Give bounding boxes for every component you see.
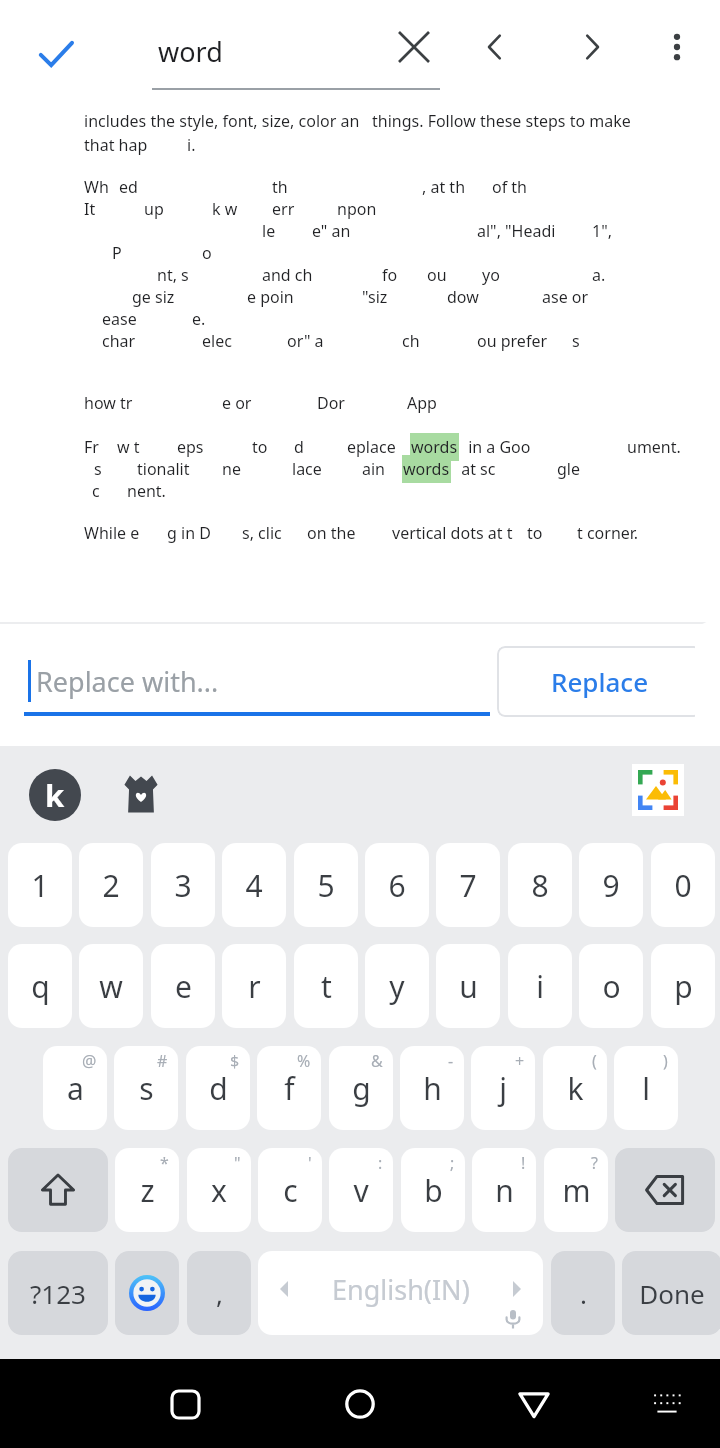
button[interactable]: r bbox=[222, 944, 286, 1028]
button[interactable]: Clear search bbox=[381, 14, 447, 80]
button[interactable]: 7 bbox=[436, 843, 500, 927]
button[interactable]: q bbox=[8, 944, 72, 1028]
button[interactable]: Replace bbox=[497, 646, 702, 717]
staticText: al", "Headi bbox=[477, 220, 556, 242]
staticText: of th bbox=[492, 176, 528, 198]
staticText: gle bbox=[557, 458, 580, 480]
button[interactable]: 6 bbox=[365, 843, 429, 927]
button[interactable]: a bbox=[43, 1046, 107, 1130]
button[interactable]: w bbox=[79, 944, 143, 1028]
button[interactable]: Done bbox=[622, 1251, 720, 1335]
staticText: r bbox=[248, 966, 261, 1007]
button[interactable]: n bbox=[472, 1148, 536, 1232]
staticText: eps bbox=[177, 436, 204, 458]
button[interactable]: ?123 bbox=[8, 1251, 108, 1335]
staticText: word bbox=[158, 33, 223, 70]
button[interactable]: Next result bbox=[559, 14, 625, 80]
button[interactable]: Emoji bbox=[115, 1251, 179, 1335]
staticText: words bbox=[403, 458, 450, 480]
staticText: npon bbox=[337, 198, 377, 220]
button[interactable]: p bbox=[651, 944, 715, 1028]
staticText: ) bbox=[663, 1050, 668, 1072]
staticText: dow bbox=[447, 286, 479, 308]
button[interactable]: Shift bbox=[8, 1148, 108, 1232]
staticText: 2 bbox=[102, 865, 120, 906]
button[interactable]: d bbox=[186, 1046, 250, 1130]
staticText: w bbox=[99, 966, 123, 1007]
button[interactable]: , bbox=[187, 1251, 251, 1335]
button[interactable]: 1 bbox=[8, 843, 72, 927]
staticText: ge siz bbox=[132, 286, 175, 308]
button[interactable]: 3 bbox=[151, 843, 215, 927]
button[interactable]: Home bbox=[327, 1371, 393, 1437]
staticText: eplace bbox=[347, 436, 400, 458]
staticText: includes the style, font, size, color an bbox=[84, 110, 360, 132]
button[interactable]: 4 bbox=[222, 843, 286, 927]
button[interactable]: Kika keyboard menu bbox=[29, 769, 81, 821]
staticText: w t bbox=[117, 436, 140, 458]
staticText: u bbox=[459, 966, 478, 1007]
button[interactable]: o bbox=[579, 944, 643, 1028]
staticText: o bbox=[602, 966, 621, 1007]
button[interactable]: m bbox=[544, 1148, 608, 1232]
staticText: e poin bbox=[247, 286, 294, 308]
button[interactable]: j bbox=[471, 1046, 535, 1130]
staticText: $ bbox=[230, 1050, 240, 1072]
button[interactable]: g bbox=[329, 1046, 393, 1130]
staticText: 8 bbox=[531, 865, 549, 906]
button[interactable]: v bbox=[329, 1148, 393, 1232]
button[interactable]: u bbox=[436, 944, 500, 1028]
staticText: * bbox=[160, 1152, 169, 1174]
button[interactable]: i bbox=[508, 944, 572, 1028]
button[interactable]: 2 bbox=[79, 843, 143, 927]
staticText: ain bbox=[362, 458, 390, 480]
staticText: i. bbox=[187, 134, 196, 156]
staticText: err bbox=[272, 198, 295, 220]
staticText: s bbox=[572, 330, 580, 352]
button[interactable]: 9 bbox=[579, 843, 643, 927]
button[interactable]: word bbox=[152, 20, 440, 90]
button[interactable]: Backspace bbox=[615, 1148, 715, 1232]
staticText: Wh bbox=[84, 176, 109, 198]
staticText: how tr bbox=[84, 392, 133, 414]
button[interactable]: z bbox=[115, 1148, 179, 1232]
button[interactable]: Stickers bbox=[116, 769, 166, 819]
staticText: 4 bbox=[245, 865, 263, 906]
staticText: ou prefer bbox=[477, 330, 548, 352]
button[interactable]: 8 bbox=[508, 843, 572, 927]
button[interactable]: e bbox=[151, 944, 215, 1028]
button[interactable]: c bbox=[258, 1148, 322, 1232]
button[interactable]: x bbox=[187, 1148, 251, 1232]
button[interactable]: Done bbox=[20, 18, 92, 90]
button[interactable]: Replace with... bbox=[24, 654, 490, 716]
staticText: ? bbox=[591, 1152, 598, 1174]
button[interactable]: s bbox=[114, 1046, 178, 1130]
staticText: e. bbox=[192, 308, 206, 330]
button[interactable]: Previous result bbox=[462, 14, 528, 80]
button[interactable]: h bbox=[400, 1046, 464, 1130]
staticText: in a Goo bbox=[464, 436, 531, 458]
button[interactable]: Hide keyboard bbox=[634, 1371, 700, 1437]
staticText: up bbox=[144, 198, 164, 220]
staticText: e bbox=[175, 966, 192, 1007]
staticText: e" an bbox=[312, 220, 351, 242]
button[interactable]: Recents bbox=[152, 1371, 218, 1437]
button[interactable]: Images bbox=[632, 764, 684, 816]
button[interactable]: b bbox=[401, 1148, 465, 1232]
button[interactable]: More options bbox=[644, 14, 710, 80]
staticText: ?123 bbox=[30, 1276, 86, 1311]
button[interactable]: 5 bbox=[294, 843, 358, 927]
button[interactable]: k bbox=[543, 1046, 607, 1130]
button[interactable]: l bbox=[614, 1046, 678, 1130]
staticText: ument. bbox=[627, 436, 681, 458]
staticText: - bbox=[448, 1050, 454, 1072]
button[interactable]: f bbox=[257, 1046, 321, 1130]
staticText: s bbox=[94, 458, 102, 480]
button[interactable]: y bbox=[365, 944, 429, 1028]
staticText: ase or bbox=[542, 286, 589, 308]
button[interactable]: 0 bbox=[651, 843, 715, 927]
button[interactable]: t bbox=[294, 944, 358, 1028]
button[interactable]: English(IN) bbox=[258, 1251, 543, 1335]
button[interactable]: Back bbox=[501, 1371, 567, 1437]
button[interactable]: . bbox=[551, 1251, 615, 1335]
